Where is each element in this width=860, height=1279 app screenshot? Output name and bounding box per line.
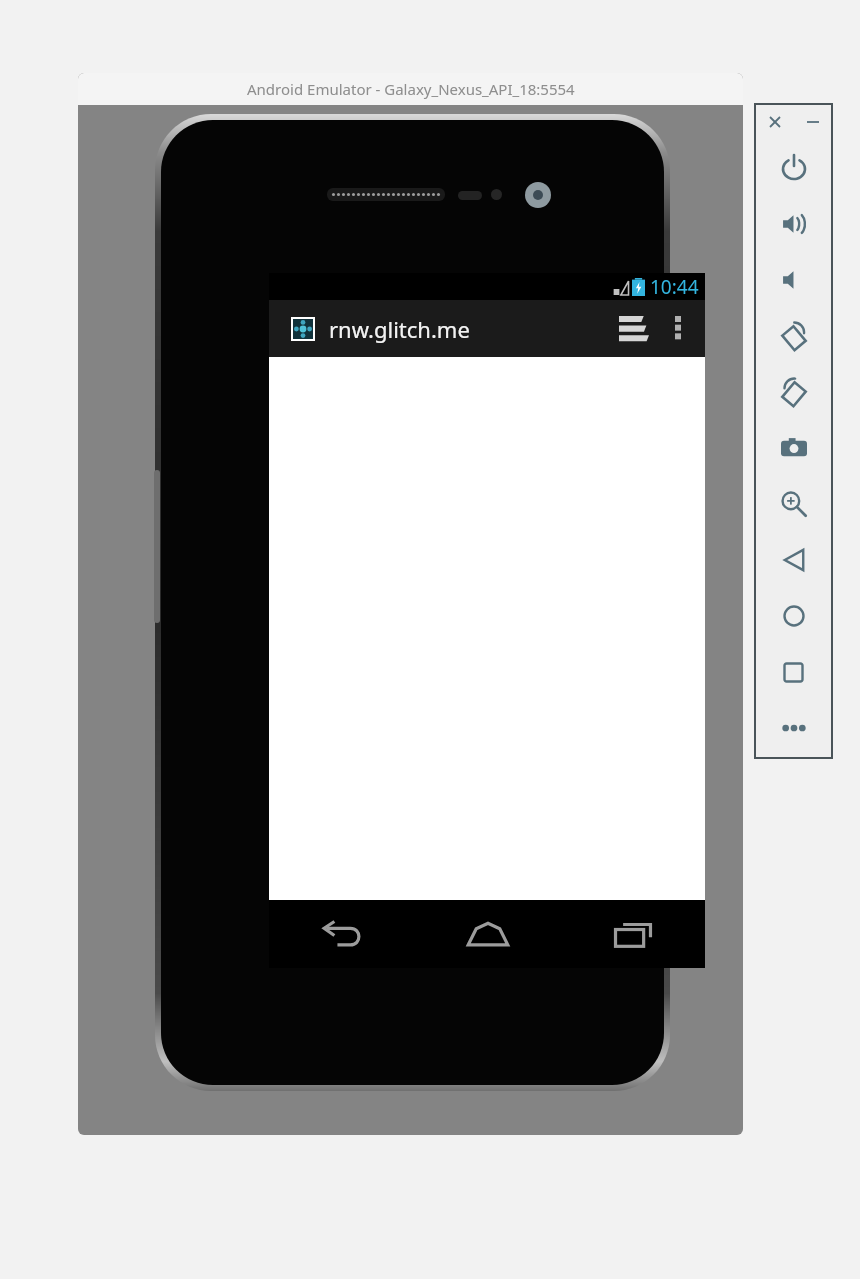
button[interactable]: Volume up [755, 196, 832, 252]
button[interactable]: Overview [755, 644, 832, 700]
button[interactable]: More [755, 700, 832, 756]
button[interactable]: Recent apps [560, 900, 705, 968]
button[interactable]: Minimize [802, 111, 824, 133]
button[interactable]: Take screenshot [755, 420, 832, 476]
button[interactable]: Back [269, 900, 415, 968]
button[interactable]: Zoom [755, 476, 832, 532]
staticText: rnw.glitch.me [329, 314, 611, 344]
button[interactable]: Close [764, 111, 786, 133]
staticText: 10:44 [650, 274, 699, 300]
button[interactable]: Rotate left [755, 308, 832, 364]
button[interactable]: Rotate right [755, 364, 832, 420]
button[interactable]: Tabs [611, 300, 657, 357]
button[interactable]: Home [755, 588, 832, 644]
button[interactable]: Home [415, 900, 560, 968]
staticText: Android Emulator - Galaxy_Nexus_API_18:5… [247, 79, 575, 99]
button[interactable]: Power [755, 140, 832, 196]
button[interactable]: Volume down [755, 252, 832, 308]
button[interactable]: More options [657, 300, 699, 357]
button[interactable]: Back [755, 532, 832, 588]
